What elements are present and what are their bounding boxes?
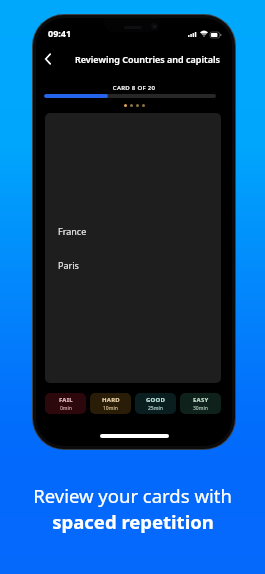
button[interactable]: HARD (90, 393, 131, 414)
staticText: Reviewing Countries and capitals (75, 53, 220, 65)
staticText: Paris (58, 259, 79, 271)
staticText: GOOD (146, 396, 166, 404)
staticText: 10min (103, 405, 118, 412)
staticText: 09:41 (48, 27, 72, 39)
staticText: France (58, 225, 87, 237)
staticText: 0min (60, 405, 72, 412)
button[interactable]: GOOD (135, 393, 176, 414)
staticText: 25min (148, 405, 163, 412)
staticText: Review your cards with (33, 483, 232, 508)
staticText: CARD 8 OF 20 (36, 84, 232, 92)
staticText: 30min (193, 405, 208, 412)
button[interactable]: FAIL (45, 393, 86, 414)
staticText: FAIL (59, 396, 73, 404)
staticText: HARD (102, 396, 120, 404)
staticText: spaced repetition (52, 509, 214, 534)
button[interactable]: France (45, 113, 221, 383)
staticText: EASY (193, 396, 209, 404)
button[interactable]: EASY (180, 393, 221, 414)
button[interactable]: Back (36, 47, 60, 71)
